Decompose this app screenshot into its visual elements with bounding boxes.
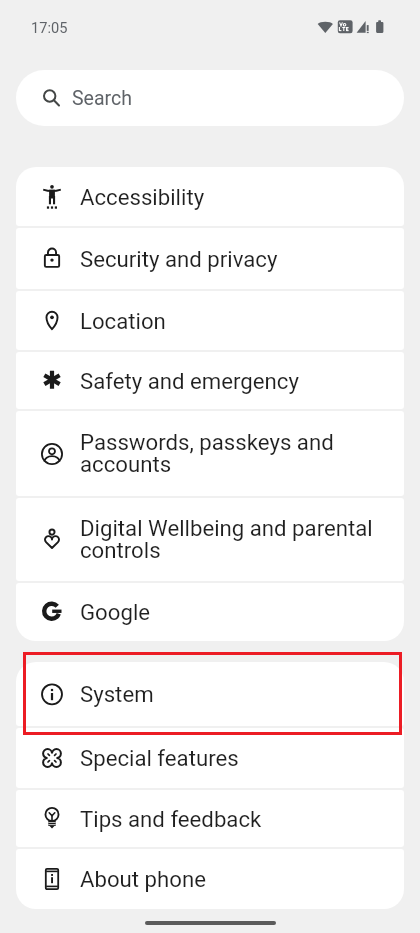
button[interactable]: Google xyxy=(16,583,404,641)
button[interactable]: Location xyxy=(16,291,404,350)
button[interactable]: About phone xyxy=(16,849,404,909)
staticText: Tips and feedback xyxy=(80,806,262,832)
button[interactable]: Safety and emergency xyxy=(16,352,404,409)
staticText: Location xyxy=(80,308,166,334)
button[interactable]: Passwords, passkeys and accounts xyxy=(16,411,404,496)
button[interactable]: Tips and feedback xyxy=(16,790,404,847)
staticText: Google xyxy=(80,599,151,625)
staticText: 17:05 xyxy=(31,19,68,36)
staticText: Digital Wellbeing and parental controls xyxy=(80,515,373,564)
staticText: Accessibility xyxy=(80,184,205,210)
button[interactable]: Search xyxy=(16,70,404,126)
other: Status icons xyxy=(316,19,388,35)
staticText: Passwords, passkeys and accounts xyxy=(80,429,334,478)
staticText: Special features xyxy=(80,745,239,771)
staticText: Security and privacy xyxy=(80,246,278,272)
button[interactable]: Accessibility xyxy=(16,167,404,226)
button[interactable]: Special features xyxy=(16,728,404,788)
staticText: About phone xyxy=(80,866,206,892)
button[interactable]: Digital Wellbeing and parental controls xyxy=(16,498,404,581)
staticText: Safety and emergency xyxy=(80,368,299,394)
button[interactable]: Security and privacy xyxy=(16,228,404,289)
staticText: System xyxy=(80,681,154,707)
button[interactable]: System xyxy=(16,662,404,726)
staticText: Search xyxy=(72,87,132,110)
